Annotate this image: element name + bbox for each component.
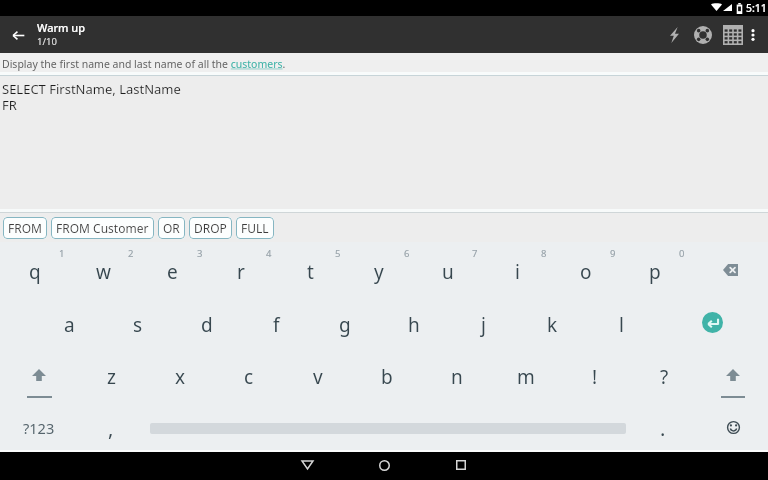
button[interactable]: , (81, 404, 141, 452)
button[interactable]: ! (561, 352, 629, 402)
staticText: k (547, 312, 558, 338)
button[interactable]: g (311, 300, 379, 350)
button[interactable]: z (77, 352, 145, 402)
staticText: r (237, 259, 245, 285)
staticText: FROM (8, 220, 42, 236)
staticText: Warm up (37, 20, 86, 35)
button[interactable]: Table (718, 20, 747, 49)
staticText: FROM Customer (56, 220, 149, 236)
button[interactable]: Backspace (700, 245, 760, 295)
staticText: w (96, 259, 111, 285)
button[interactable]: Emoji (703, 403, 763, 451)
button[interactable]: More options (740, 22, 766, 48)
button[interactable]: Shift (701, 355, 765, 395)
staticText: . (660, 415, 666, 442)
staticText: s (133, 312, 143, 338)
button[interactable]: . (633, 404, 693, 452)
staticText: 6 (404, 247, 410, 260)
button[interactable]: m (492, 352, 560, 402)
button[interactable]: ? (630, 352, 698, 402)
button[interactable]: a (35, 300, 103, 350)
staticText: e (167, 259, 178, 285)
button[interactable]: q (1, 247, 69, 297)
staticText: OR (163, 220, 180, 236)
staticText: ! (592, 364, 598, 390)
button[interactable]: Home (360, 452, 408, 480)
button[interactable]: Recent apps (437, 452, 485, 480)
staticText: v (313, 364, 323, 390)
staticText: 3 (197, 247, 203, 260)
staticText: j (481, 312, 486, 338)
staticText: t (307, 259, 314, 285)
button[interactable]: t (276, 247, 344, 297)
button[interactable]: u (414, 247, 482, 297)
staticText: 4 (266, 247, 272, 260)
staticText: 7 (472, 247, 478, 260)
button[interactable]: h (380, 300, 448, 350)
button[interactable]: y (345, 247, 413, 297)
button[interactable]: b (353, 352, 421, 402)
button[interactable]: i (483, 247, 551, 297)
staticText: FULL (241, 220, 269, 236)
staticText: x (175, 364, 186, 390)
button[interactable]: Back (1, 18, 35, 52)
button[interactable]: DROP (189, 217, 232, 239)
staticText: q (29, 259, 41, 285)
button[interactable]: Run (659, 20, 688, 49)
staticText: 9 (610, 247, 616, 260)
button[interactable]: j (449, 300, 517, 350)
button[interactable]: w (69, 247, 137, 297)
button[interactable]: k (518, 300, 586, 350)
staticText: ?123 (23, 418, 55, 438)
button[interactable]: Shift (7, 355, 71, 395)
staticText: ? (660, 364, 669, 390)
staticText: m (517, 364, 535, 390)
staticText: 1/10 (37, 35, 57, 48)
button[interactable]: r (207, 247, 275, 297)
staticText: h (408, 312, 420, 338)
staticText: SELECT FirstName, LastName FR (2, 80, 181, 113)
staticText: f (273, 312, 280, 338)
button[interactable]: o (552, 247, 620, 297)
button[interactable]: ?123 (6, 404, 72, 452)
button[interactable]: Enter (682, 297, 742, 347)
staticText: o (580, 259, 592, 285)
button[interactable]: OR (158, 217, 185, 239)
button[interactable]: f (242, 300, 310, 350)
button[interactable]: Space (138, 404, 638, 452)
staticText: c (244, 364, 254, 390)
staticText: 5 (335, 247, 341, 260)
staticText: , (108, 415, 114, 442)
staticText: 1 (59, 247, 65, 260)
staticText: u (442, 259, 454, 285)
staticText: d (201, 312, 213, 338)
button[interactable]: s (104, 300, 172, 350)
staticText: 8 (541, 247, 547, 260)
button[interactable]: FULL (236, 217, 274, 239)
staticText: n (451, 364, 463, 390)
button[interactable]: v (284, 352, 352, 402)
staticText: 0 (679, 247, 685, 260)
button[interactable]: n (423, 352, 491, 402)
staticText: Display the first name and last name of … (2, 57, 286, 71)
button[interactable]: d (173, 300, 241, 350)
staticText: DROP (194, 220, 227, 236)
button[interactable]: Back (283, 452, 331, 480)
staticText: 5:11 (746, 1, 767, 15)
button[interactable]: l (587, 300, 655, 350)
staticText: b (381, 364, 393, 390)
staticText: a (64, 312, 75, 338)
staticText: 2 (128, 247, 134, 260)
staticText: p (649, 259, 661, 285)
staticText: g (339, 312, 351, 338)
button[interactable]: p (621, 247, 689, 297)
button[interactable]: c (215, 352, 283, 402)
button[interactable]: x (146, 352, 214, 402)
button[interactable]: Help (688, 20, 717, 49)
staticText: z (107, 364, 116, 390)
button[interactable]: e (138, 247, 206, 297)
button[interactable]: FROM (3, 217, 47, 239)
staticText: l (619, 312, 624, 338)
staticText: i (515, 259, 520, 285)
button[interactable]: FROM Customer (51, 217, 154, 239)
